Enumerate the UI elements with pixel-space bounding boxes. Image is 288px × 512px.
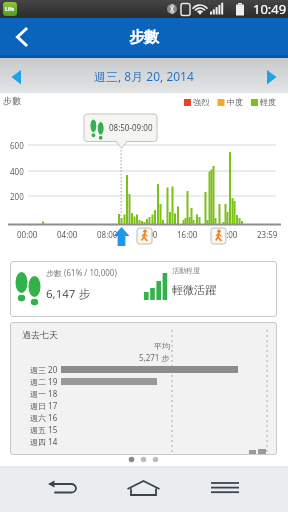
staticText: 步數 bbox=[3, 95, 21, 106]
staticText: 600 bbox=[10, 140, 24, 151]
button[interactable]: 步數 (61% / 10,000) bbox=[10, 261, 277, 317]
staticText: 週六 16 bbox=[30, 412, 58, 423]
staticText: 週二 19 bbox=[30, 376, 58, 387]
button[interactable] bbox=[0, 466, 96, 512]
staticText: 23:59 bbox=[257, 229, 278, 240]
staticText: Life bbox=[5, 6, 15, 13]
staticText: 活動程度 bbox=[172, 266, 200, 275]
staticText: 週五 15 bbox=[30, 424, 58, 435]
staticText: 強烈 bbox=[193, 97, 209, 107]
staticText: 輕微活躍 bbox=[172, 283, 216, 297]
staticText: 週四 14 bbox=[30, 436, 58, 447]
staticText: 過去七天 bbox=[22, 329, 58, 340]
staticText: 週三 20 bbox=[30, 364, 58, 375]
button[interactable]: 週三, 8月 20, 2014 bbox=[0, 58, 288, 93]
staticText: 6,147 步 bbox=[46, 286, 90, 302]
staticText: 週三, 8月 20, 2014 bbox=[94, 68, 194, 84]
staticText: 週一 18 bbox=[30, 388, 58, 399]
staticText: 200 bbox=[10, 191, 24, 202]
button[interactable] bbox=[192, 466, 288, 512]
staticText: 08:50-09:00 bbox=[109, 122, 153, 133]
staticText: 00:00 bbox=[17, 229, 38, 240]
staticText: 20:00 bbox=[217, 229, 238, 240]
staticText: 16:00 bbox=[177, 229, 198, 240]
staticText: 04:00 bbox=[57, 229, 78, 240]
staticText: 平均 bbox=[154, 341, 170, 351]
staticText: 中度 bbox=[227, 97, 243, 107]
button[interactable]: 過去七天 bbox=[10, 322, 277, 455]
button[interactable] bbox=[0, 18, 44, 56]
staticText: 步數 bbox=[129, 28, 159, 47]
staticText: 08:00 bbox=[97, 229, 118, 240]
staticText: 步數 (61% / 10,000) bbox=[46, 267, 117, 278]
staticText: 週日 17 bbox=[30, 400, 58, 411]
button[interactable] bbox=[96, 466, 192, 512]
staticText: 5,271 步 bbox=[139, 352, 170, 363]
staticText: 12:00 bbox=[137, 229, 158, 240]
staticText: 400 bbox=[10, 166, 24, 177]
staticText: 10:49 bbox=[253, 0, 287, 18]
staticText: 輕度 bbox=[260, 97, 276, 107]
